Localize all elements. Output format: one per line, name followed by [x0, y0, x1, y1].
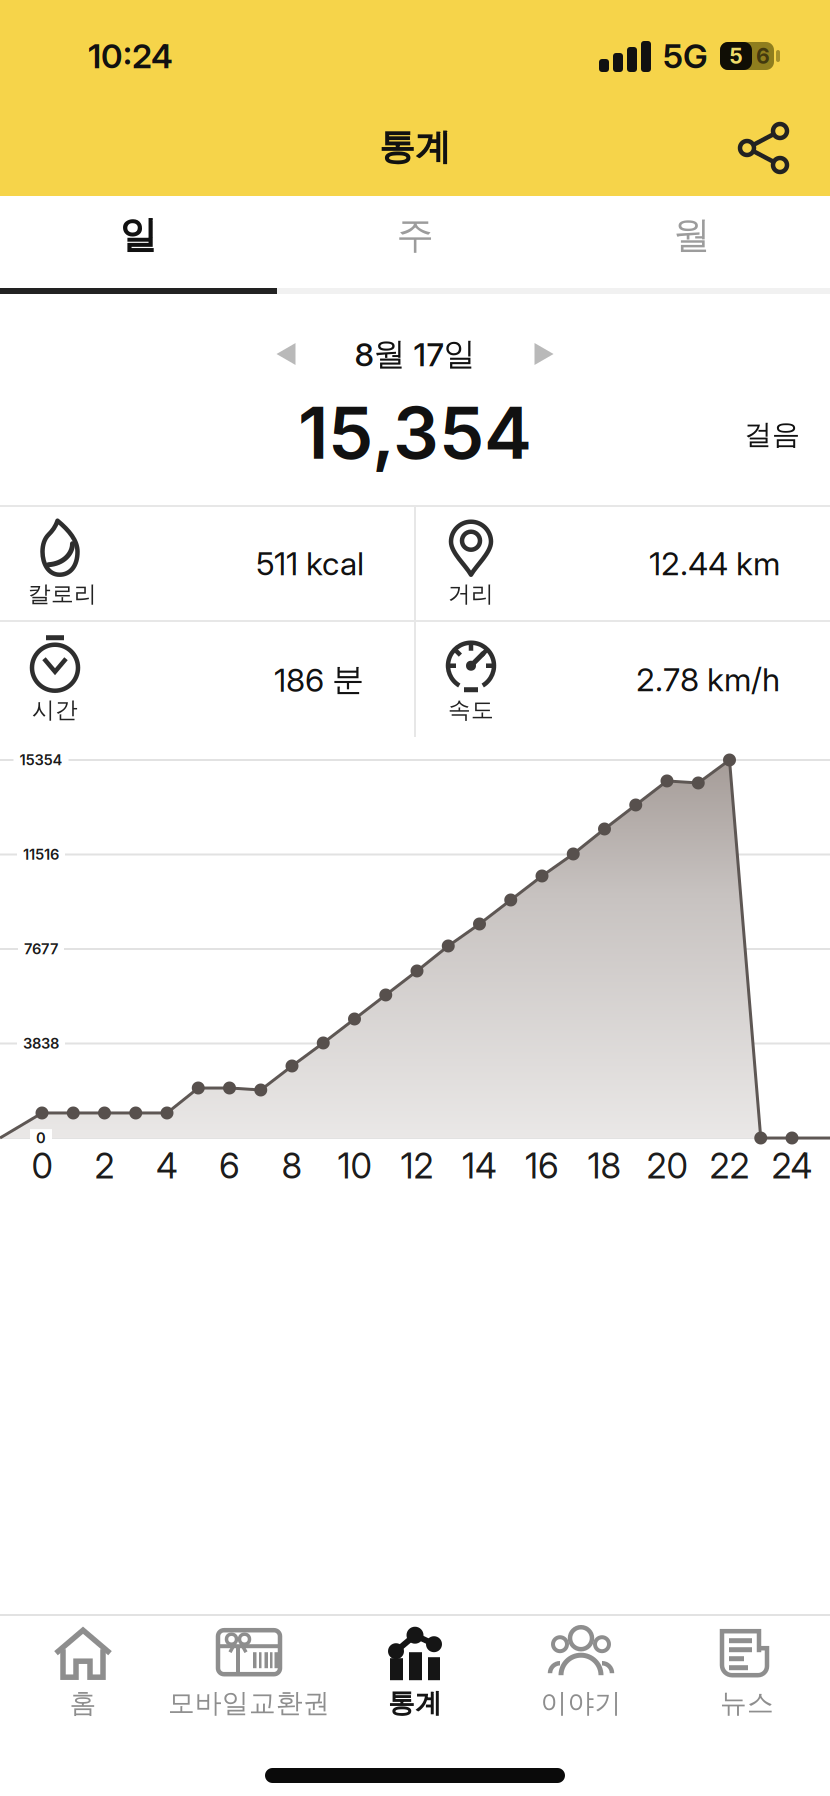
staticText: 칼로리: [28, 580, 97, 608]
button[interactable]: Previous day: [274, 342, 296, 366]
staticText: 5G: [663, 36, 708, 76]
button[interactable]: 이야기: [498, 1616, 664, 1728]
staticText: 2.78 km/h: [636, 660, 780, 699]
staticText: 186 분: [274, 659, 364, 700]
staticText: 주: [396, 211, 433, 258]
staticText: 11516: [23, 846, 59, 863]
staticText: 16: [525, 1145, 559, 1187]
staticText: 이야기: [540, 1686, 621, 1720]
staticText: 22: [709, 1145, 749, 1187]
staticText: 15354: [19, 751, 62, 769]
staticText: 4: [156, 1145, 178, 1187]
staticText: 통계: [388, 1686, 442, 1720]
button[interactable]: Next day: [533, 342, 555, 366]
staticText: 뉴스: [720, 1686, 774, 1720]
staticText: 거리: [448, 580, 494, 608]
staticText: 18: [587, 1145, 621, 1187]
staticText: 12: [400, 1145, 433, 1187]
staticText: 6: [219, 1145, 240, 1187]
staticText: 511 kcal: [256, 544, 364, 583]
staticText: 0: [36, 1129, 46, 1147]
staticText: 6: [756, 43, 770, 69]
staticText: 8: [281, 1145, 302, 1187]
button[interactable]: 주: [277, 196, 553, 288]
staticText: 모바일교환권: [168, 1686, 330, 1720]
staticText: 일: [120, 211, 157, 258]
staticText: 12.44 km: [649, 544, 780, 583]
staticText: 홈: [69, 1686, 96, 1720]
staticText: 24: [771, 1145, 812, 1187]
button[interactable]: 통계: [332, 1616, 498, 1728]
staticText: 15,354: [298, 389, 532, 476]
staticText: 7677: [24, 940, 58, 958]
staticText: 10:24: [88, 36, 173, 76]
staticText: 월: [673, 211, 710, 258]
button[interactable]: 월: [553, 196, 830, 288]
staticText: 8월 17일: [354, 334, 475, 374]
staticText: 14: [462, 1145, 497, 1187]
button[interactable]: 뉴스: [664, 1616, 830, 1728]
button[interactable]: 일: [0, 196, 277, 288]
staticText: 통계: [379, 124, 451, 170]
staticText: 2: [94, 1145, 114, 1187]
staticText: 걸음: [744, 417, 800, 452]
staticText: 10: [337, 1145, 371, 1187]
button[interactable]: Share: [738, 122, 788, 172]
staticText: 시간: [32, 696, 78, 724]
staticText: 3838: [23, 1035, 59, 1052]
staticText: 20: [646, 1145, 687, 1187]
staticText: 5: [729, 43, 742, 69]
staticText: 속도: [448, 696, 494, 724]
button[interactable]: 모바일교환권: [166, 1616, 332, 1728]
staticText: 0: [31, 1145, 52, 1187]
button[interactable]: 홈: [0, 1616, 166, 1728]
